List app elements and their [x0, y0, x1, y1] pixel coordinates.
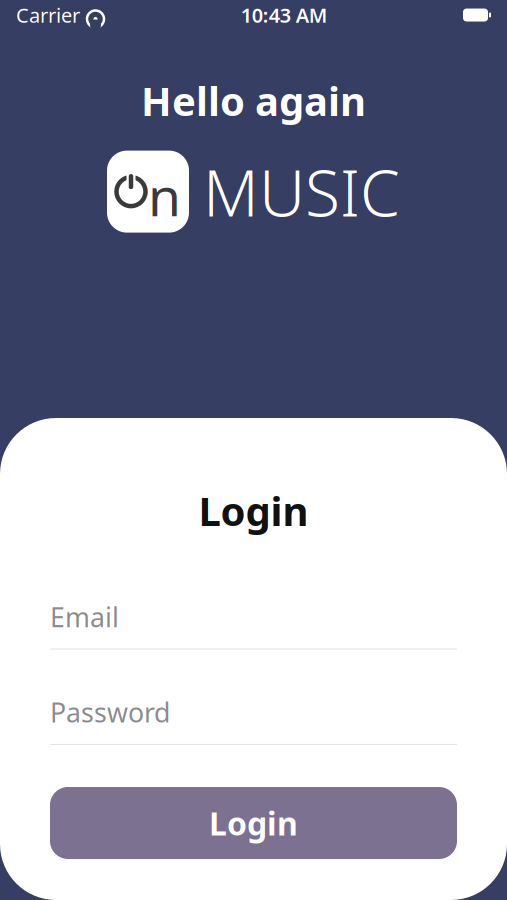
staticText: Carrier: [16, 2, 80, 28]
staticText: Login: [198, 484, 308, 537]
staticText: Login: [209, 802, 298, 844]
staticText: Email: [50, 599, 119, 634]
button[interactable]: Login: [50, 787, 457, 859]
staticText: n: [148, 160, 181, 231]
staticText: MUSIC: [203, 149, 400, 234]
staticText: 10:43 AM: [241, 2, 328, 28]
staticText: Hello again: [141, 74, 366, 127]
staticText: Password: [50, 694, 170, 730]
